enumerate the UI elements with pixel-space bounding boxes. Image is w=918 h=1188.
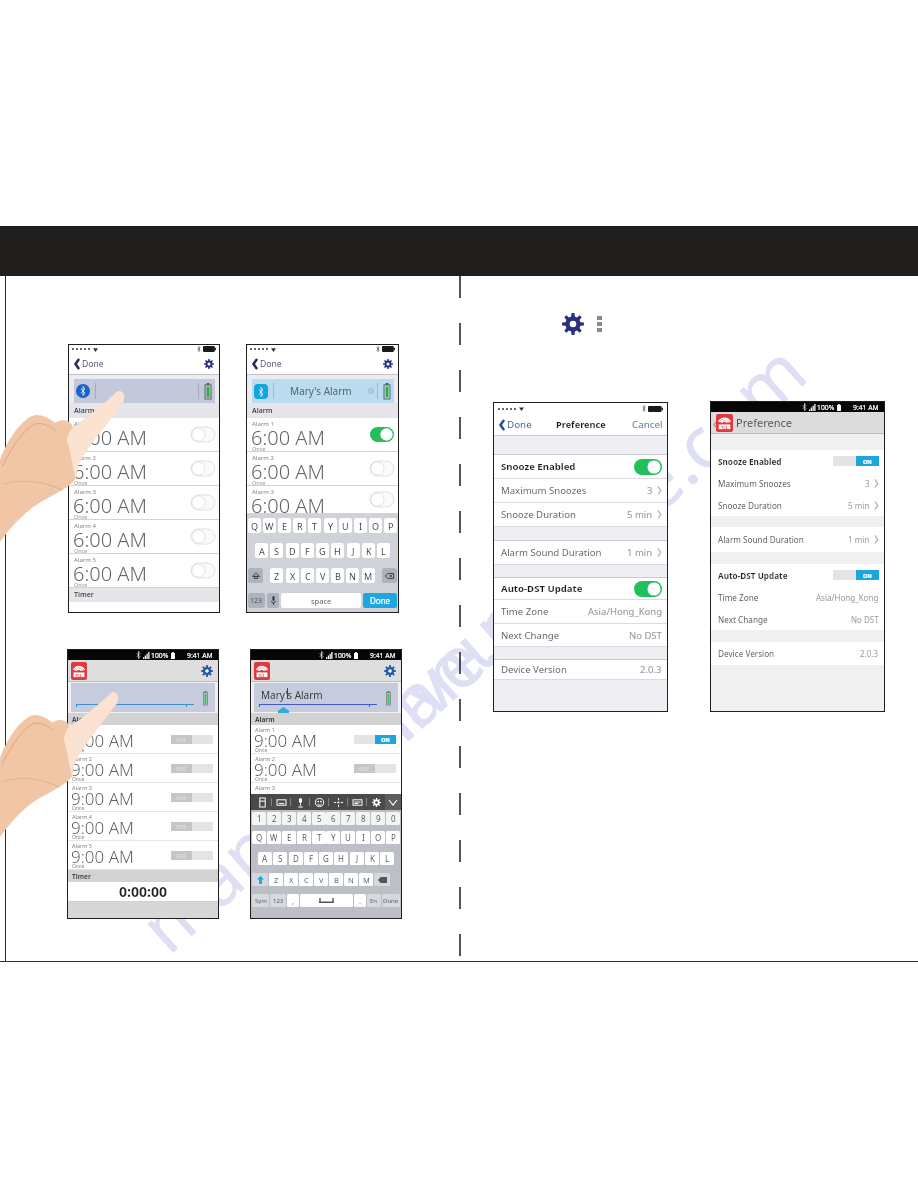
button[interactable]: U (341, 831, 355, 844)
button[interactable]: H (334, 852, 348, 865)
button[interactable]: P (384, 518, 397, 533)
button[interactable]: D (289, 852, 303, 865)
button[interactable]: 1 (252, 812, 266, 825)
button[interactable]: Alarm 4 (68, 812, 218, 841)
button[interactable]: Alarm 1 (251, 725, 401, 754)
button[interactable]: Snooze Enabled (494, 455, 667, 479)
button[interactable]: A (255, 543, 268, 558)
button[interactable]: Alarm 2 (69, 452, 219, 486)
button[interactable]: N (346, 568, 359, 583)
button[interactable]: Cancel (632, 418, 663, 431)
button[interactable]: Done (382, 894, 400, 907)
button[interactable]: R (297, 831, 311, 844)
button[interactable]: Settings (384, 665, 396, 677)
button[interactable]: App home (716, 414, 733, 432)
button[interactable]: Time Zone (494, 600, 667, 624)
button[interactable]: Alarm 2 (247, 452, 398, 486)
button[interactable]: Q (252, 831, 266, 844)
button[interactable]: Snooze Duration (718, 494, 879, 516)
button[interactable]: M (362, 568, 375, 583)
button[interactable]: Space (300, 894, 353, 907)
button[interactable]: Keyboard tool (348, 794, 366, 810)
button[interactable]: Auto-DST Update (718, 564, 879, 586)
button[interactable]: Shift (248, 568, 263, 583)
button[interactable]: 123 (248, 593, 265, 608)
button[interactable]: Alarm 3 (247, 486, 398, 514)
button[interactable]: 6 (326, 812, 340, 825)
button[interactable]: F (304, 852, 318, 865)
button[interactable]: E (282, 831, 296, 844)
button[interactable]: Keyboard tool (291, 794, 309, 810)
button[interactable]: . (354, 894, 366, 907)
button[interactable]: Done (498, 418, 533, 431)
button[interactable]: 0 (386, 812, 400, 825)
button[interactable]: Z (269, 873, 283, 886)
button[interactable]: Settings (560, 311, 586, 337)
button[interactable]: H (331, 543, 344, 558)
button[interactable]: Done (74, 358, 104, 370)
button[interactable]: Hide keyboard (385, 794, 401, 810)
button[interactable]: Maximum Snoozes (718, 472, 879, 494)
button[interactable]: R (293, 518, 306, 533)
button[interactable]: U (339, 518, 352, 533)
button[interactable]: G (316, 543, 329, 558)
button[interactable]: V (316, 568, 329, 583)
button[interactable]: X (284, 873, 298, 886)
button[interactable]: , (287, 894, 299, 907)
button[interactable]: Next Change (718, 608, 879, 630)
button[interactable]: Alarm 1 (68, 725, 218, 754)
button[interactable]: T (308, 518, 321, 533)
button[interactable]: 9 (371, 812, 385, 825)
button[interactable]: W (267, 831, 281, 844)
button[interactable]: Alarm 2 (68, 754, 218, 783)
button[interactable]: Device Version (494, 660, 667, 680)
button[interactable]: Time Zone (718, 586, 879, 608)
button[interactable]: Alarm 1 (247, 418, 398, 452)
button[interactable]: C (299, 873, 313, 886)
button[interactable]: Keyboard tool (310, 794, 328, 810)
button[interactable]: S (273, 852, 287, 865)
button[interactable]: 8 (356, 812, 370, 825)
button[interactable]: App home (254, 662, 270, 680)
button[interactable]: O (371, 831, 385, 844)
button[interactable]: F (301, 543, 314, 558)
button[interactable]: L (377, 543, 390, 558)
button[interactable]: Settings (201, 665, 213, 677)
button[interactable]: Y (326, 831, 340, 844)
button[interactable]: 123 (270, 894, 286, 907)
button[interactable]: Auto-DST Update (494, 578, 667, 600)
button[interactable]: Mary's Alarm (254, 683, 398, 712)
button[interactable] (71, 683, 215, 712)
button[interactable]: Alarm 3 (69, 486, 219, 520)
button[interactable]: Y (324, 518, 337, 533)
button[interactable]: Sym (252, 894, 269, 907)
button[interactable]: 4 (297, 812, 311, 825)
button[interactable]: B (331, 568, 344, 583)
button[interactable]: Keyboard tool (329, 794, 347, 810)
button[interactable]: Alarm 5 (68, 841, 218, 870)
button[interactable]: J (350, 852, 364, 865)
button[interactable]: space (281, 593, 361, 608)
button[interactable]: A (258, 852, 272, 865)
button[interactable]: I (354, 518, 367, 533)
button[interactable]: 7 (341, 812, 355, 825)
button[interactable]: J (347, 543, 360, 558)
button[interactable]: T (312, 831, 326, 844)
button[interactable]: Settings (383, 359, 393, 369)
button[interactable]: B (329, 873, 343, 886)
button[interactable]: C (301, 568, 314, 583)
button[interactable]: Keyboard tool (367, 794, 385, 810)
button[interactable]: Backspace (374, 873, 390, 886)
button[interactable]: 3 (282, 812, 296, 825)
button[interactable]: Backspace (382, 568, 397, 583)
button[interactable]: W (263, 518, 276, 533)
button[interactable]: E (278, 518, 291, 533)
button[interactable]: M (359, 873, 373, 886)
button[interactable]: Alarm 2 (251, 754, 401, 783)
button[interactable]: Dictate (267, 593, 279, 608)
button[interactable]: Snooze Duration (494, 503, 667, 527)
button[interactable]: Snooze Enabled (718, 450, 879, 472)
button[interactable]: App home (71, 662, 87, 680)
button[interactable]: Done (363, 593, 397, 608)
button[interactable]: Z (270, 568, 283, 583)
